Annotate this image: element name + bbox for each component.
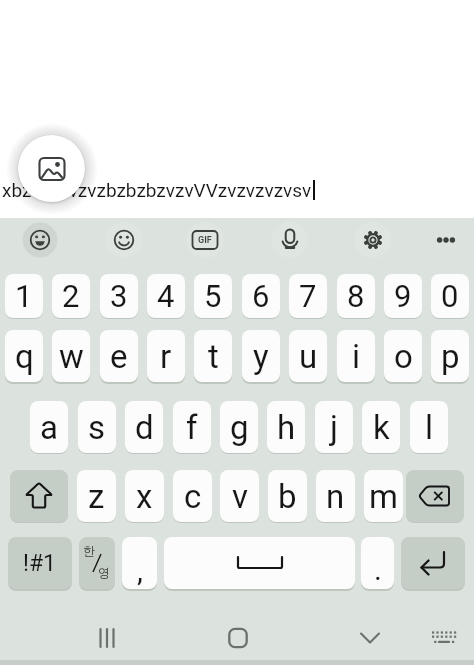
staticText: v (232, 477, 248, 516)
staticText: 7 (299, 278, 317, 314)
staticText: c (184, 477, 202, 516)
staticText: u (299, 337, 318, 376)
staticText: p (441, 337, 460, 376)
staticText: GIF (198, 235, 212, 246)
staticText: xbzvzvzvzvzbzbzbzvzvVVzvzvzvzvsv (2, 179, 312, 201)
staticText: !#1 (23, 550, 57, 577)
staticText: s (88, 408, 106, 447)
staticText: d (135, 408, 154, 447)
staticText: b (278, 477, 297, 516)
staticText: 2 (62, 278, 80, 314)
staticText: , (137, 553, 143, 588)
staticText: a (40, 408, 58, 447)
staticText: 8 (347, 278, 365, 314)
staticText: 9 (394, 278, 412, 314)
staticText: x (136, 477, 153, 516)
staticText: r (160, 337, 172, 376)
staticText: w (59, 337, 84, 376)
staticText: k (373, 408, 390, 447)
staticText: g (230, 408, 249, 447)
staticText: t (208, 337, 219, 376)
staticText: m (369, 477, 398, 516)
staticText: 5 (204, 278, 222, 314)
staticText: j (330, 408, 338, 447)
staticText: . (374, 552, 382, 587)
staticText: e (110, 337, 128, 376)
staticText: q (15, 337, 34, 376)
staticText: l (425, 408, 434, 447)
staticText: 6 (252, 278, 270, 314)
staticText: 영 (98, 565, 110, 580)
staticText: h (277, 408, 296, 447)
staticText: o (394, 337, 413, 376)
staticText: y (253, 337, 269, 376)
staticText: n (326, 477, 345, 516)
staticText: f (186, 408, 198, 447)
staticText: i (352, 337, 361, 376)
staticText: 한 (83, 543, 95, 558)
staticText: z (88, 477, 105, 516)
staticText: 4 (157, 278, 175, 314)
staticText: 1 (15, 278, 33, 314)
staticText: 3 (110, 278, 128, 314)
staticText: 0 (441, 278, 459, 314)
